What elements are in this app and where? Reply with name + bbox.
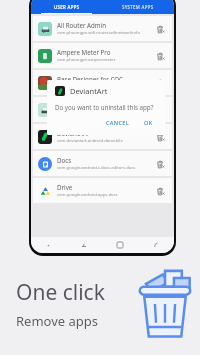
staticText: SYSTEM APPS <box>122 4 154 10</box>
staticText: com.base.designer.coc <box>57 84 102 90</box>
button[interactable]: Docs <box>33 151 172 176</box>
staticText: USER APPS <box>54 4 80 10</box>
staticText: com.phuongpn.amperemeter <box>57 57 116 63</box>
staticText: com.google.android.apps.docs <box>57 192 118 198</box>
button[interactable]: Uninstall Base Designer for COC <box>153 76 167 90</box>
staticText: com.phuongpn.wifi.router.wifinetworkinfo <box>57 30 140 36</box>
button[interactable]: Home <box>102 242 138 248</box>
button[interactable]: Uninstall Docs <box>153 157 167 171</box>
button[interactable]: DeviantArt <box>33 124 172 149</box>
button[interactable]: Uninstall All Router Admin <box>153 22 167 36</box>
button[interactable]: Uninstall DeviantArt <box>153 130 167 144</box>
staticText: One click <box>16 278 105 307</box>
button[interactable]: SYSTEM APPS <box>102 0 174 14</box>
button[interactable]: Ampere Meter Pro <box>33 43 172 68</box>
button[interactable]: USER APPS <box>31 0 102 14</box>
button[interactable]: Recent apps <box>66 242 102 248</box>
staticText: All Router Admin <box>57 21 107 29</box>
staticText: com.phuongpn.defaultrouterpassword <box>57 111 134 117</box>
button[interactable]: OK <box>140 117 157 129</box>
staticText: DeviantArt <box>70 86 108 96</box>
staticText: Default Router P..d - Router Master <box>57 102 150 110</box>
button[interactable]: Back <box>138 242 174 248</box>
button[interactable]: All Router Admin <box>33 16 172 41</box>
button[interactable]: CANCEL <box>102 117 134 129</box>
staticText: Remove apps <box>16 312 99 330</box>
staticText: Drive <box>57 183 73 191</box>
staticText: Do you want to uninstall this app? <box>55 103 154 111</box>
staticText: CANCEL <box>106 119 130 127</box>
button[interactable]: Uninstall Ampere Meter Pro <box>153 49 167 63</box>
staticText: com.deviantart.android.damobile <box>57 138 123 144</box>
button[interactable]: Drive <box>33 178 172 203</box>
staticText: Docs <box>57 156 72 164</box>
staticText: OK <box>144 119 153 127</box>
staticText: Ampere Meter Pro <box>57 48 111 56</box>
button[interactable]: Uninstall Drive <box>153 184 167 198</box>
staticText: Base Designer for COC <box>57 75 123 83</box>
button[interactable]: Default Router P..d - Router Master <box>33 97 172 122</box>
staticText: DeviantArt <box>57 129 88 137</box>
staticText: com.google.android.s.docs.editors.docs <box>57 165 136 171</box>
button[interactable]: Base Designer for COC <box>33 70 172 95</box>
